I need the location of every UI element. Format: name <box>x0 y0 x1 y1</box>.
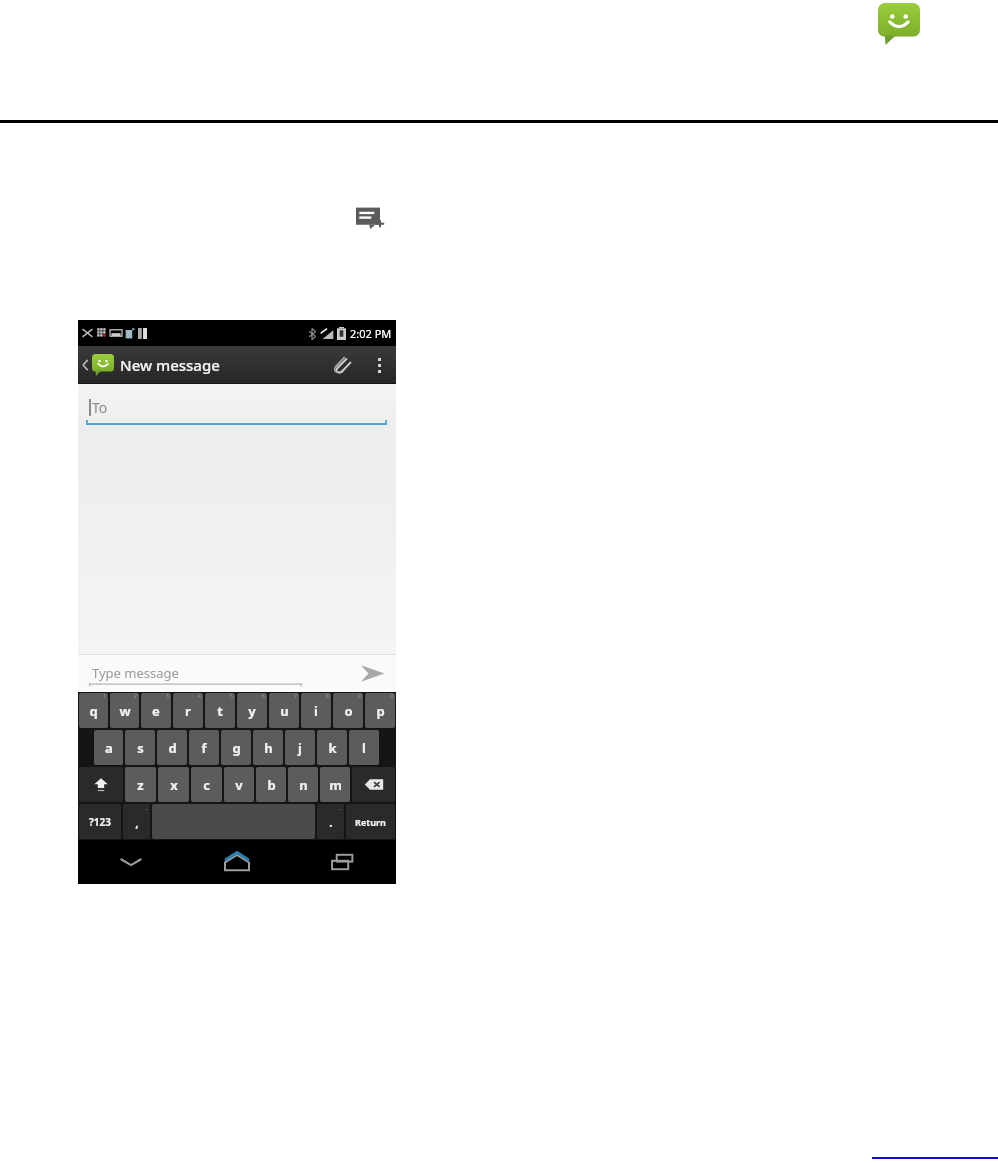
button[interactable]: x <box>158 767 189 802</box>
staticText: x <box>170 776 178 794</box>
button[interactable]: f <box>189 730 219 765</box>
staticText: h <box>264 739 273 757</box>
staticText: 9 <box>358 693 361 700</box>
staticText: New message <box>120 355 220 375</box>
button[interactable]: p <box>365 693 395 728</box>
button[interactable]: ?123 <box>79 804 121 839</box>
staticText: m <box>329 776 342 794</box>
staticText: 0 <box>390 693 393 700</box>
button[interactable]: . <box>317 804 344 839</box>
staticText: d <box>168 739 177 757</box>
staticText: 8 <box>326 693 329 700</box>
button[interactable]: o <box>333 693 363 728</box>
button[interactable]: Home <box>184 840 290 884</box>
button[interactable]: u <box>269 693 299 728</box>
staticText: e <box>152 702 160 720</box>
staticText: 4 <box>198 693 201 700</box>
staticText: s <box>137 739 144 757</box>
staticText: _ <box>339 804 342 811</box>
staticText: r <box>185 702 191 720</box>
staticText: ?123 <box>89 815 111 829</box>
button[interactable]: m <box>320 767 350 802</box>
button[interactable]: Backspace <box>352 767 395 802</box>
button[interactable]: v <box>224 767 254 802</box>
button[interactable]: i <box>301 693 331 728</box>
other: Back <box>81 357 90 373</box>
button[interactable]: q <box>79 693 108 728</box>
button[interactable]: Attach <box>322 346 362 384</box>
staticText: z <box>137 776 144 794</box>
staticText: f <box>201 739 207 757</box>
button[interactable]: Recent apps <box>290 840 396 884</box>
staticText: i <box>314 702 318 720</box>
staticText: Return <box>355 816 386 828</box>
button[interactable]: b <box>256 767 286 802</box>
button[interactable]: n <box>288 767 318 802</box>
staticText: 3 <box>166 693 169 700</box>
staticText: 1 <box>103 693 106 700</box>
button[interactable]: j <box>285 730 315 765</box>
staticText: w <box>119 702 131 720</box>
staticText: k <box>328 739 337 757</box>
button[interactable]: g <box>221 730 251 765</box>
button[interactable]: h <box>253 730 283 765</box>
button[interactable]: a <box>94 730 123 765</box>
button[interactable]: , <box>123 804 150 839</box>
staticText: g <box>232 739 241 757</box>
button[interactable]: z <box>125 767 156 802</box>
button[interactable]: r <box>173 693 203 728</box>
button[interactable]: d <box>157 730 187 765</box>
staticText: u <box>280 702 289 720</box>
staticText: a <box>105 739 113 757</box>
button[interactable]: l <box>349 730 379 765</box>
button[interactable]: Return <box>346 804 395 839</box>
staticText: j <box>298 739 302 757</box>
staticText: l <box>362 739 366 757</box>
staticText: , <box>135 814 139 830</box>
staticText: p <box>376 702 385 720</box>
staticText: _ <box>145 804 148 811</box>
staticText: v <box>235 776 243 794</box>
staticText: 7 <box>294 693 297 700</box>
staticText: t <box>217 702 223 720</box>
button[interactable]: Back <box>80 354 220 376</box>
staticText: q <box>89 702 98 720</box>
staticText: Type message <box>92 664 179 682</box>
staticText: c <box>203 776 210 794</box>
button[interactable]: y <box>237 693 267 728</box>
staticText: 2 <box>134 693 137 700</box>
button[interactable]: s <box>125 730 155 765</box>
staticText: n <box>299 776 308 794</box>
button[interactable]: c <box>191 767 222 802</box>
button[interactable]: Send <box>348 654 396 692</box>
staticText: 5 <box>230 693 233 700</box>
staticText: b <box>267 776 276 794</box>
button[interactable]: Shift <box>79 767 123 802</box>
button[interactable]: k <box>317 730 347 765</box>
staticText: 6 <box>262 693 265 700</box>
button[interactable]: w <box>110 693 139 728</box>
staticText: To <box>92 398 108 417</box>
button[interactable]: Hide keyboard <box>78 840 184 884</box>
button[interactable]: e <box>141 693 171 728</box>
staticText: . <box>329 814 333 830</box>
button[interactable]: t <box>205 693 235 728</box>
staticText: y <box>248 702 256 720</box>
button[interactable]: More options <box>362 346 396 384</box>
staticText: o <box>344 702 353 720</box>
staticText: 2:02 PM <box>350 326 392 341</box>
